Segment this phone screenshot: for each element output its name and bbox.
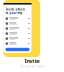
staticText: Invite — [24, 57, 39, 65]
button[interactable] — [5, 21, 29, 26]
staticText: to your trip — [5, 11, 22, 15]
staticText: Friends and family — [20, 65, 44, 68]
button[interactable] — [5, 41, 29, 46]
button[interactable] — [5, 16, 29, 21]
button[interactable] — [5, 31, 29, 36]
button[interactable] — [5, 36, 29, 41]
staticText: Invite others — [5, 8, 24, 11]
button[interactable] — [5, 48, 29, 51]
button[interactable] — [5, 26, 29, 31]
